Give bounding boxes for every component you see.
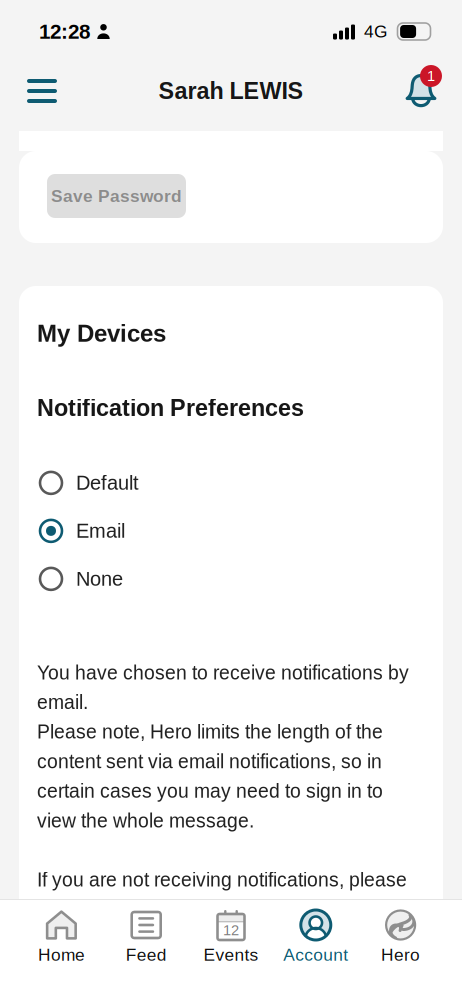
- button[interactable]: Hero: [358, 900, 443, 964]
- staticText: 12: [223, 922, 239, 938]
- button[interactable]: Menu: [20, 69, 64, 113]
- staticText: 1: [427, 68, 435, 84]
- button[interactable]: Default: [37, 459, 426, 507]
- staticText: Sarah LEWIS: [158, 78, 303, 104]
- staticText: My Devices: [37, 320, 166, 347]
- staticText: None: [76, 568, 123, 590]
- staticText: Default: [76, 472, 139, 494]
- staticText: Notification Preferences: [37, 395, 304, 421]
- button[interactable]: Account: [273, 900, 358, 964]
- button[interactable]: Save Password: [47, 174, 186, 218]
- button[interactable]: Email: [37, 507, 426, 555]
- staticText: Save Password: [51, 186, 182, 206]
- staticText: Hero: [381, 945, 420, 964]
- button[interactable]: Feed: [104, 900, 189, 964]
- staticText: Account: [283, 945, 348, 964]
- staticText: Email: [76, 520, 125, 542]
- staticText: 4G: [364, 22, 387, 41]
- staticText: 12:28: [39, 20, 90, 43]
- button[interactable]: Home: [19, 900, 104, 964]
- button[interactable]: Notifications: [404, 69, 448, 113]
- button[interactable]: 12: [189, 900, 273, 964]
- staticText: You have chosen to receive notifications…: [37, 662, 409, 920]
- staticText: Feed: [126, 945, 167, 964]
- staticText: Events: [203, 945, 258, 964]
- staticText: Home: [38, 945, 85, 964]
- button[interactable]: None: [37, 555, 426, 603]
